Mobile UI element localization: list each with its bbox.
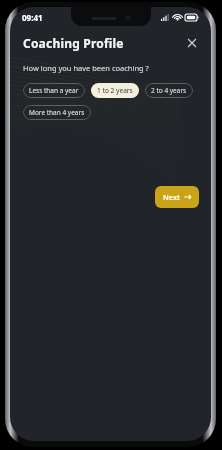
button[interactable]: 2 to 4 years (145, 83, 193, 98)
staticText: How long you have been coaching ? (23, 63, 149, 73)
staticText: Less than a year (29, 86, 79, 95)
button[interactable]: Close (184, 35, 200, 51)
staticText: Next (163, 192, 180, 202)
staticText: 1 to 2 years (97, 86, 133, 95)
staticText: Coaching Profile (23, 35, 124, 51)
staticText: More than 4 years (29, 108, 85, 117)
button[interactable]: 1 to 2 years (91, 83, 139, 98)
button[interactable]: More than 4 years (23, 105, 91, 120)
staticText: 09:41 (22, 12, 43, 23)
button[interactable]: Next (155, 186, 199, 208)
staticText: 2 to 4 years (151, 86, 187, 95)
button[interactable]: Less than a year (23, 83, 85, 98)
